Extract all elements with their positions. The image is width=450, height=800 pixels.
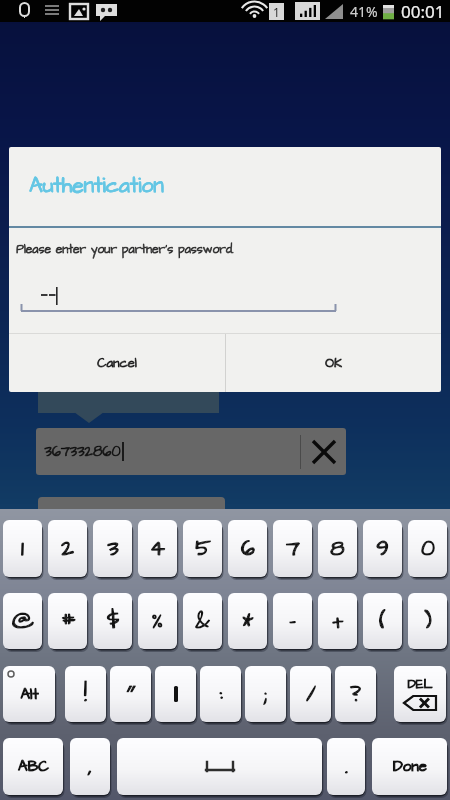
staticText: 4 (150, 533, 165, 564)
staticText: # (61, 607, 75, 636)
button[interactable]: 6 (228, 520, 267, 577)
staticText: / (306, 680, 316, 709)
button[interactable]: ? (335, 666, 376, 722)
staticText: Authentication (29, 171, 164, 200)
staticText: . (345, 752, 348, 781)
staticText: Please enter your partner's password. (16, 241, 234, 258)
button[interactable]: OK (226, 334, 441, 392)
button[interactable]: 8 (318, 520, 357, 577)
staticText: ( (379, 607, 386, 636)
staticText: ) (424, 607, 432, 636)
button[interactable]: @ (3, 593, 42, 649)
staticText: OK (325, 354, 342, 372)
staticText: 1 (21, 533, 24, 564)
staticText: Alt (20, 684, 39, 705)
staticText: Alt (20, 684, 39, 705)
button[interactable]: ABC (3, 738, 63, 795)
button[interactable]: Done (372, 738, 447, 795)
staticText: OK (325, 354, 342, 372)
button[interactable]: % (138, 593, 177, 649)
staticText: DEL (407, 675, 433, 693)
staticText: ( (379, 607, 386, 636)
staticText: ) (424, 607, 432, 636)
staticText: 2 (61, 533, 74, 564)
staticText: + (332, 607, 344, 636)
staticText: ! (84, 680, 87, 709)
staticText: 5 (195, 533, 211, 564)
button[interactable]: + (318, 593, 357, 649)
staticText: + (332, 607, 344, 636)
button[interactable]: 4 (138, 520, 177, 577)
staticText: Cancel (97, 354, 137, 372)
staticText: 1 (273, 4, 280, 20)
button[interactable]: ; (245, 666, 286, 722)
staticText: 5 (195, 533, 211, 564)
staticText: 367332860 (44, 442, 121, 462)
button[interactable]: 9 (363, 520, 402, 577)
button[interactable]: ″ (110, 666, 151, 722)
staticText: 9 (376, 533, 389, 564)
staticText: 6 (241, 533, 255, 564)
button[interactable]: ( (363, 593, 402, 649)
staticText: ? (350, 680, 361, 709)
button[interactable]: Cancel (9, 334, 225, 392)
staticText: . (345, 752, 348, 781)
staticText: 9 (376, 533, 389, 564)
button[interactable]: 367332860 (36, 428, 346, 475)
staticText: , (88, 752, 92, 781)
staticText: / (306, 680, 316, 709)
button[interactable]: 0 (408, 520, 447, 577)
staticText: 0 (421, 533, 435, 564)
staticText: ; (264, 680, 267, 709)
staticText: 8 (330, 533, 345, 564)
staticText: $ (107, 607, 119, 636)
button[interactable]: ) (408, 593, 447, 649)
staticText: ″ (126, 680, 135, 709)
button[interactable]: 7 (273, 520, 312, 577)
button[interactable]: - (273, 593, 312, 649)
staticText: # (61, 607, 75, 636)
staticText: ; (264, 680, 267, 709)
button[interactable]: 2 (48, 520, 87, 577)
button[interactable]: # (48, 593, 87, 649)
staticText: 1 (21, 533, 24, 564)
button[interactable]: $ (93, 593, 132, 649)
button[interactable]: , (70, 738, 110, 795)
staticText: ″ (126, 680, 135, 709)
staticText: Done (393, 756, 427, 777)
staticText: Done (393, 756, 427, 777)
staticText: 3 (107, 533, 119, 564)
button[interactable]: : (200, 666, 241, 722)
button[interactable] (155, 666, 196, 722)
button[interactable]: . (327, 738, 365, 795)
button[interactable]: / (290, 666, 331, 722)
staticText: , (88, 752, 92, 781)
staticText: 3 (107, 533, 119, 564)
staticText: ABC (18, 756, 49, 777)
staticText: : (219, 680, 223, 709)
button[interactable]: & (183, 593, 222, 649)
button[interactable]: ! (65, 666, 106, 722)
staticText: @ (12, 607, 34, 636)
staticText: * (242, 607, 253, 636)
staticText: - (289, 607, 296, 636)
button[interactable]: DEL (394, 666, 446, 722)
staticText: 00:01 (401, 0, 445, 22)
button[interactable] (117, 738, 322, 795)
button[interactable]: Clear text (301, 428, 346, 475)
staticText: Cancel (97, 354, 137, 372)
staticText: % (152, 607, 163, 636)
button[interactable]: 3 (93, 520, 132, 577)
staticText: $ (107, 607, 119, 636)
button[interactable]: Alt (3, 666, 55, 722)
staticText: 6 (241, 533, 255, 564)
staticText: DEL (407, 675, 433, 693)
staticText: @ (12, 607, 34, 636)
staticText: ! (84, 680, 87, 709)
staticText: 0 (421, 533, 435, 564)
button[interactable]: 5 (183, 520, 222, 577)
staticText: 41% (350, 2, 378, 21)
button[interactable]: 1 (3, 520, 42, 577)
staticText: 7 (286, 533, 300, 564)
button[interactable]: * (228, 593, 267, 649)
